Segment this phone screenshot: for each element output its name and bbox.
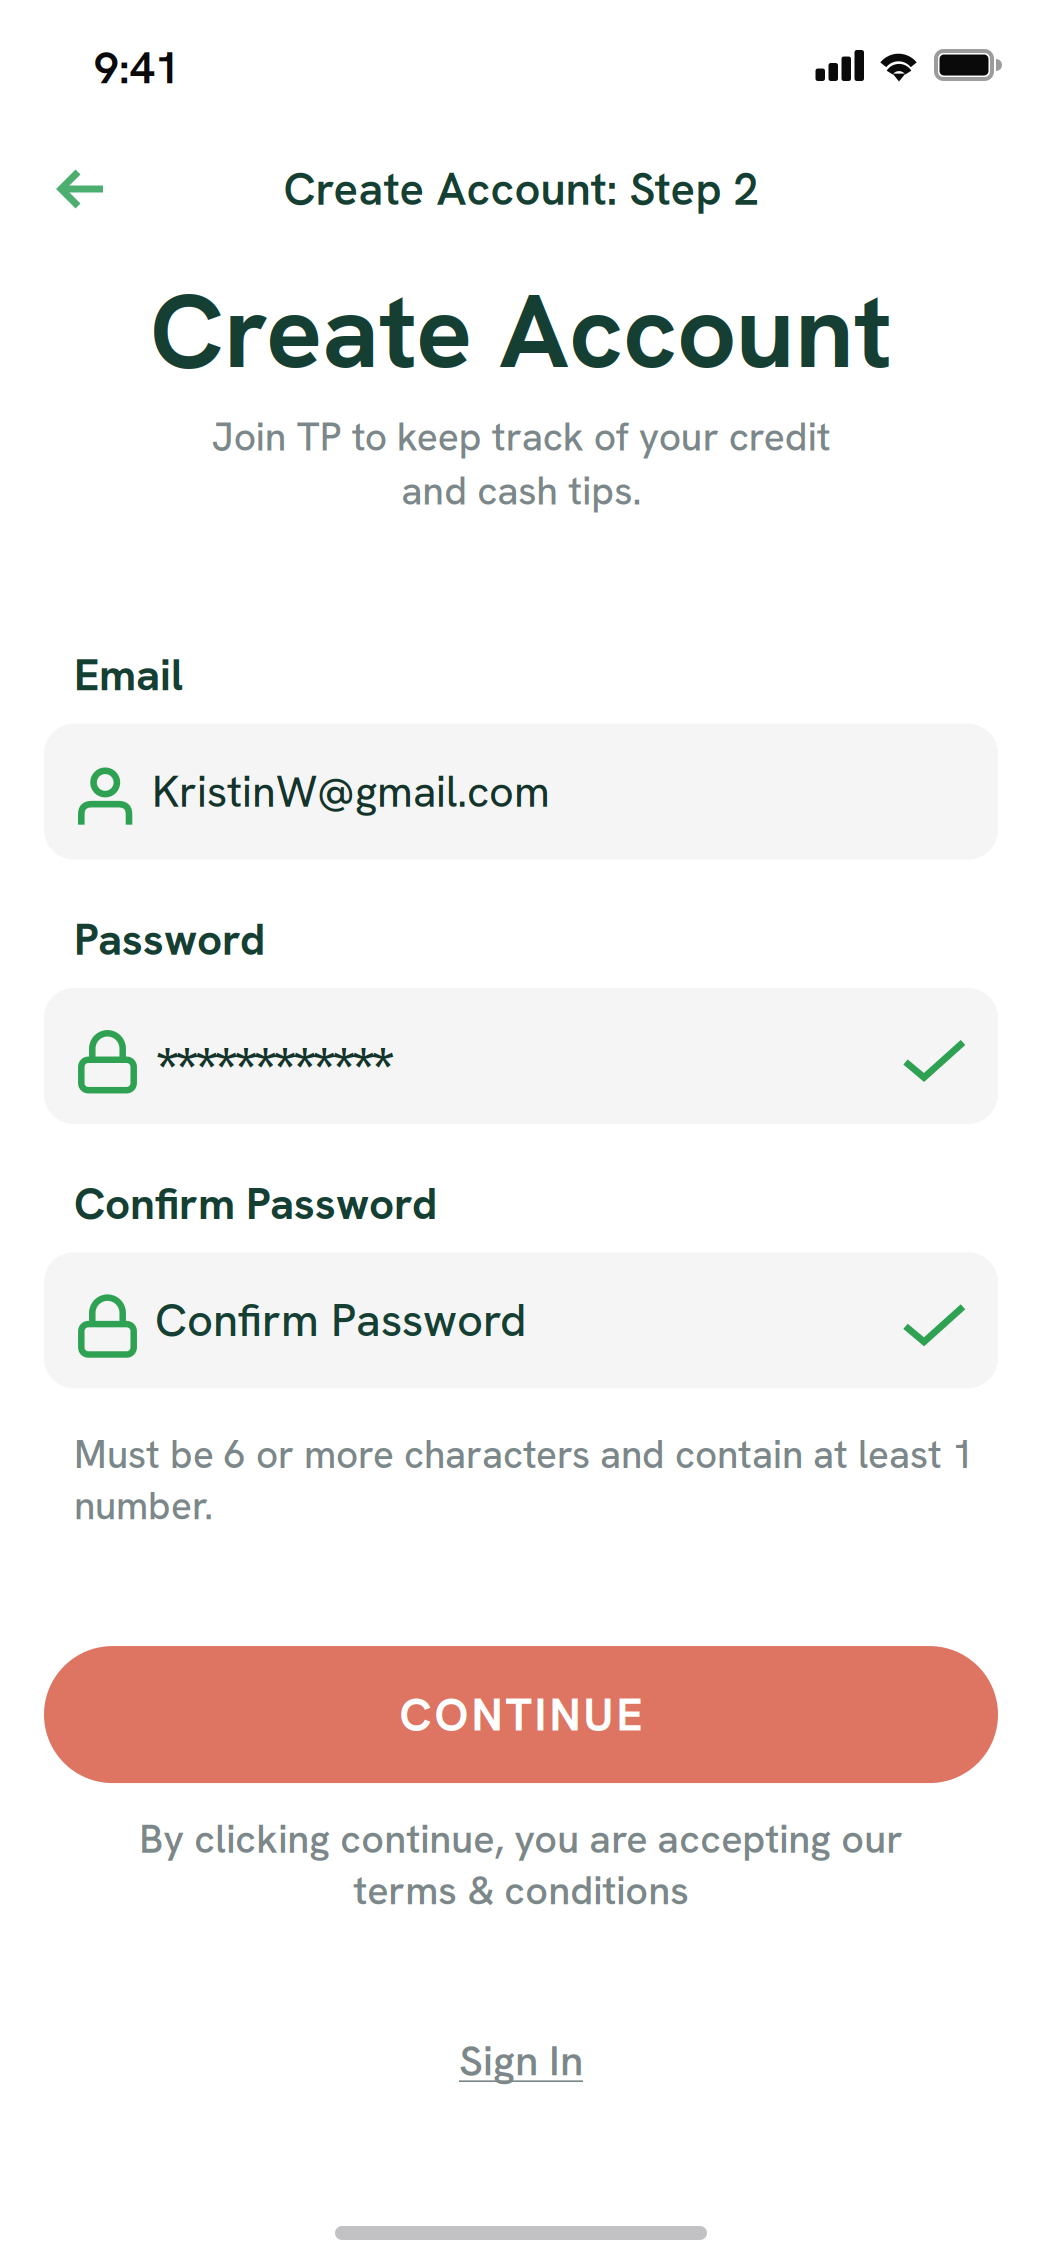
- staticText: Confirm Password: [74, 1175, 437, 1232]
- staticText: Must be 6 or more characters and contain…: [74, 1429, 974, 1531]
- button[interactable]: Back: [36, 151, 128, 227]
- button[interactable]: KristinW@gmail.com: [44, 724, 998, 860]
- staticText: Join TP to keep track of your credit and…: [211, 411, 830, 516]
- staticText: Create Account: Step 2: [283, 159, 758, 219]
- staticText: By clicking continue, you are accepting …: [139, 1813, 903, 1916]
- staticText: Password: [74, 911, 265, 968]
- button[interactable]: Confirm Password: [44, 1252, 998, 1388]
- staticText: CONTINUE: [399, 1685, 642, 1744]
- staticText: KristinW@gmail.com: [152, 764, 550, 820]
- staticText: Create Account: [150, 263, 892, 398]
- staticText: Email: [74, 646, 183, 704]
- button[interactable]: CONTINUE: [44, 1646, 998, 1783]
- staticText: Confirm Password: [155, 1291, 526, 1350]
- staticText: ************: [155, 1029, 396, 1111]
- button[interactable]: ************: [44, 988, 998, 1124]
- button[interactable]: Sign In: [459, 2033, 583, 2088]
- staticText: 9:41: [94, 39, 180, 97]
- staticText: Sign In: [459, 2033, 583, 2088]
